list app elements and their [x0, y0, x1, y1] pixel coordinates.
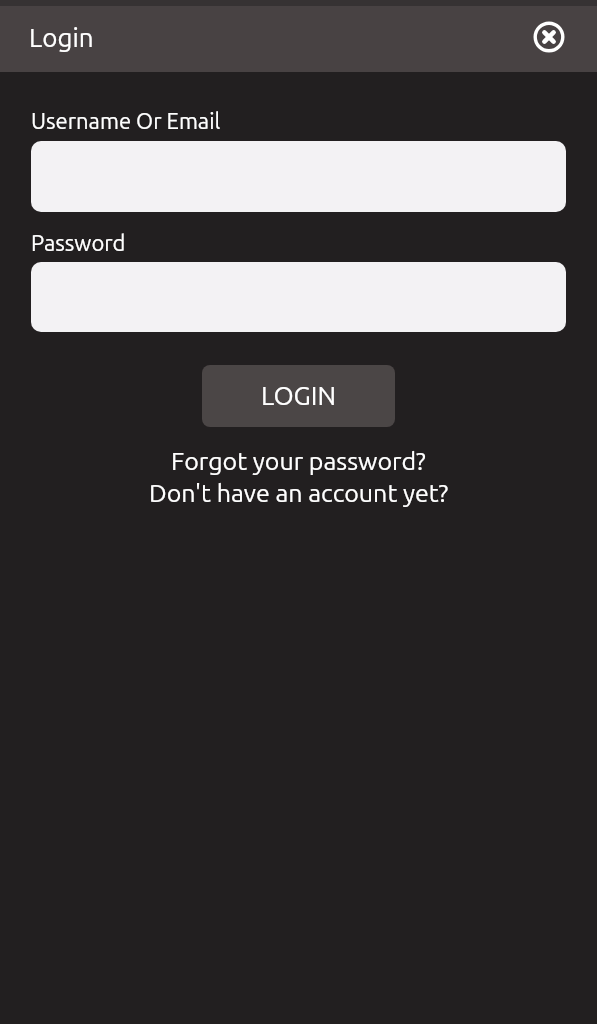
staticText: Don't have an account yet?: [149, 479, 449, 507]
staticText: LOGIN: [261, 381, 337, 410]
button[interactable]: [31, 141, 566, 212]
button[interactable]: Don't have an account yet?: [149, 479, 449, 507]
button[interactable]: Forgot your password?: [171, 447, 426, 475]
staticText: Password: [31, 230, 126, 255]
button[interactable]: [31, 262, 566, 332]
staticText: Login: [29, 23, 94, 52]
button[interactable]: [519, 9, 579, 69]
staticText: Forgot your password?: [171, 447, 426, 475]
button[interactable]: LOGIN: [202, 365, 395, 427]
staticText: Username Or Email: [31, 108, 221, 133]
